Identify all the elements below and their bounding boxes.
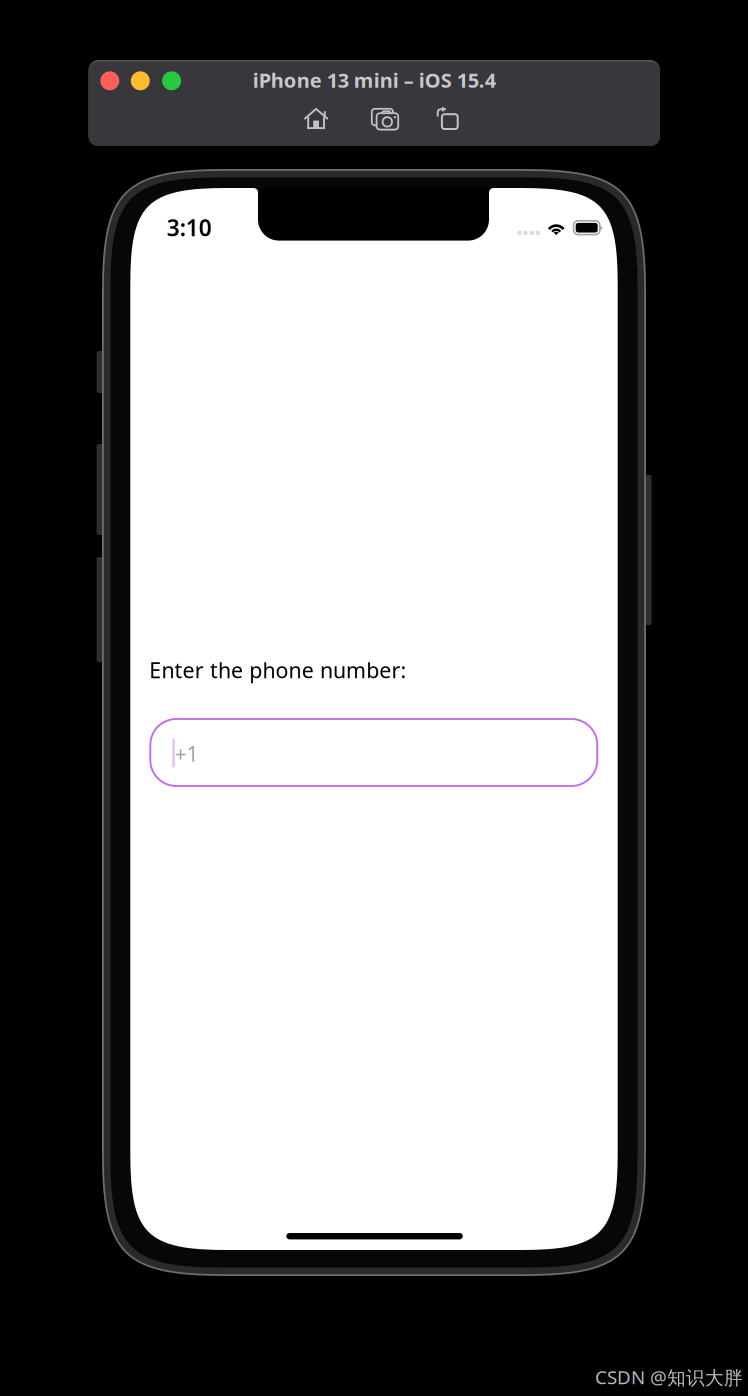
button[interactable]: Zoom: [162, 71, 181, 90]
staticText: CSDN @知识大胖: [595, 1365, 743, 1389]
button[interactable]: Screenshot: [367, 104, 403, 134]
button[interactable]: Phone number: [150, 719, 597, 786]
button[interactable]: Home: [298, 104, 334, 134]
staticText: Enter the phone number:: [149, 656, 406, 684]
staticText: 3:10: [167, 212, 212, 242]
staticText: iPhone 13 mini – iOS 15.4: [253, 67, 496, 93]
staticText: +1: [175, 739, 199, 768]
button[interactable]: Rotate device: [428, 104, 464, 134]
button[interactable]: Minimize: [131, 71, 150, 90]
button[interactable]: Close: [100, 71, 119, 90]
